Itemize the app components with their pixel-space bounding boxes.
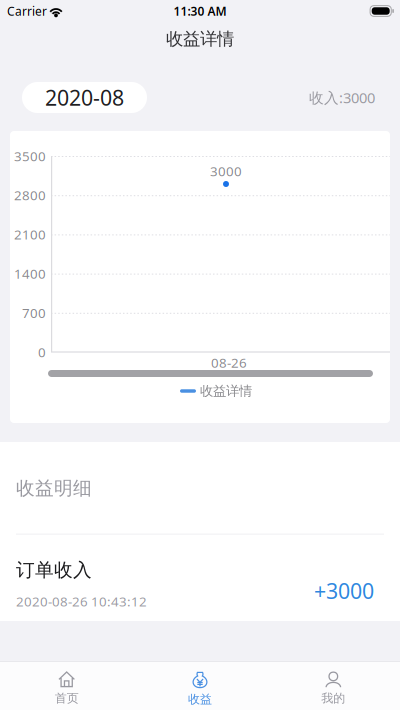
staticText: 首页: [55, 691, 79, 706]
staticText: 3500: [14, 147, 46, 165]
staticText: 我的: [321, 691, 345, 706]
button[interactable]: 首页: [0, 661, 133, 710]
staticText: 收益详情: [200, 383, 252, 399]
staticText: 2020-08: [45, 83, 124, 112]
staticText: 11:30 AM: [173, 3, 226, 19]
staticText: 订单收入: [16, 559, 92, 581]
staticText: +3000: [314, 577, 374, 605]
staticText: 08-26: [211, 354, 247, 371]
staticText: Carrier: [7, 3, 47, 19]
staticText: 2100: [14, 225, 46, 243]
staticText: 收益明细: [16, 477, 92, 500]
staticText: 2800: [14, 186, 46, 204]
button[interactable]: 2020-08: [22, 82, 147, 113]
staticText: 0: [38, 343, 46, 361]
staticText: 3000: [210, 162, 242, 180]
staticText: 收益详情: [166, 28, 234, 50]
staticText: 700: [22, 304, 46, 322]
button[interactable]: 我的: [267, 661, 400, 710]
button[interactable]: 订单收入: [0, 535, 400, 624]
button[interactable]: 收益: [133, 661, 267, 710]
staticText: 收入:3000: [309, 88, 375, 107]
staticText: 1400: [14, 265, 46, 282]
staticText: 2020-08-26 10:43:12: [16, 593, 147, 610]
staticText: 收益: [188, 692, 212, 707]
